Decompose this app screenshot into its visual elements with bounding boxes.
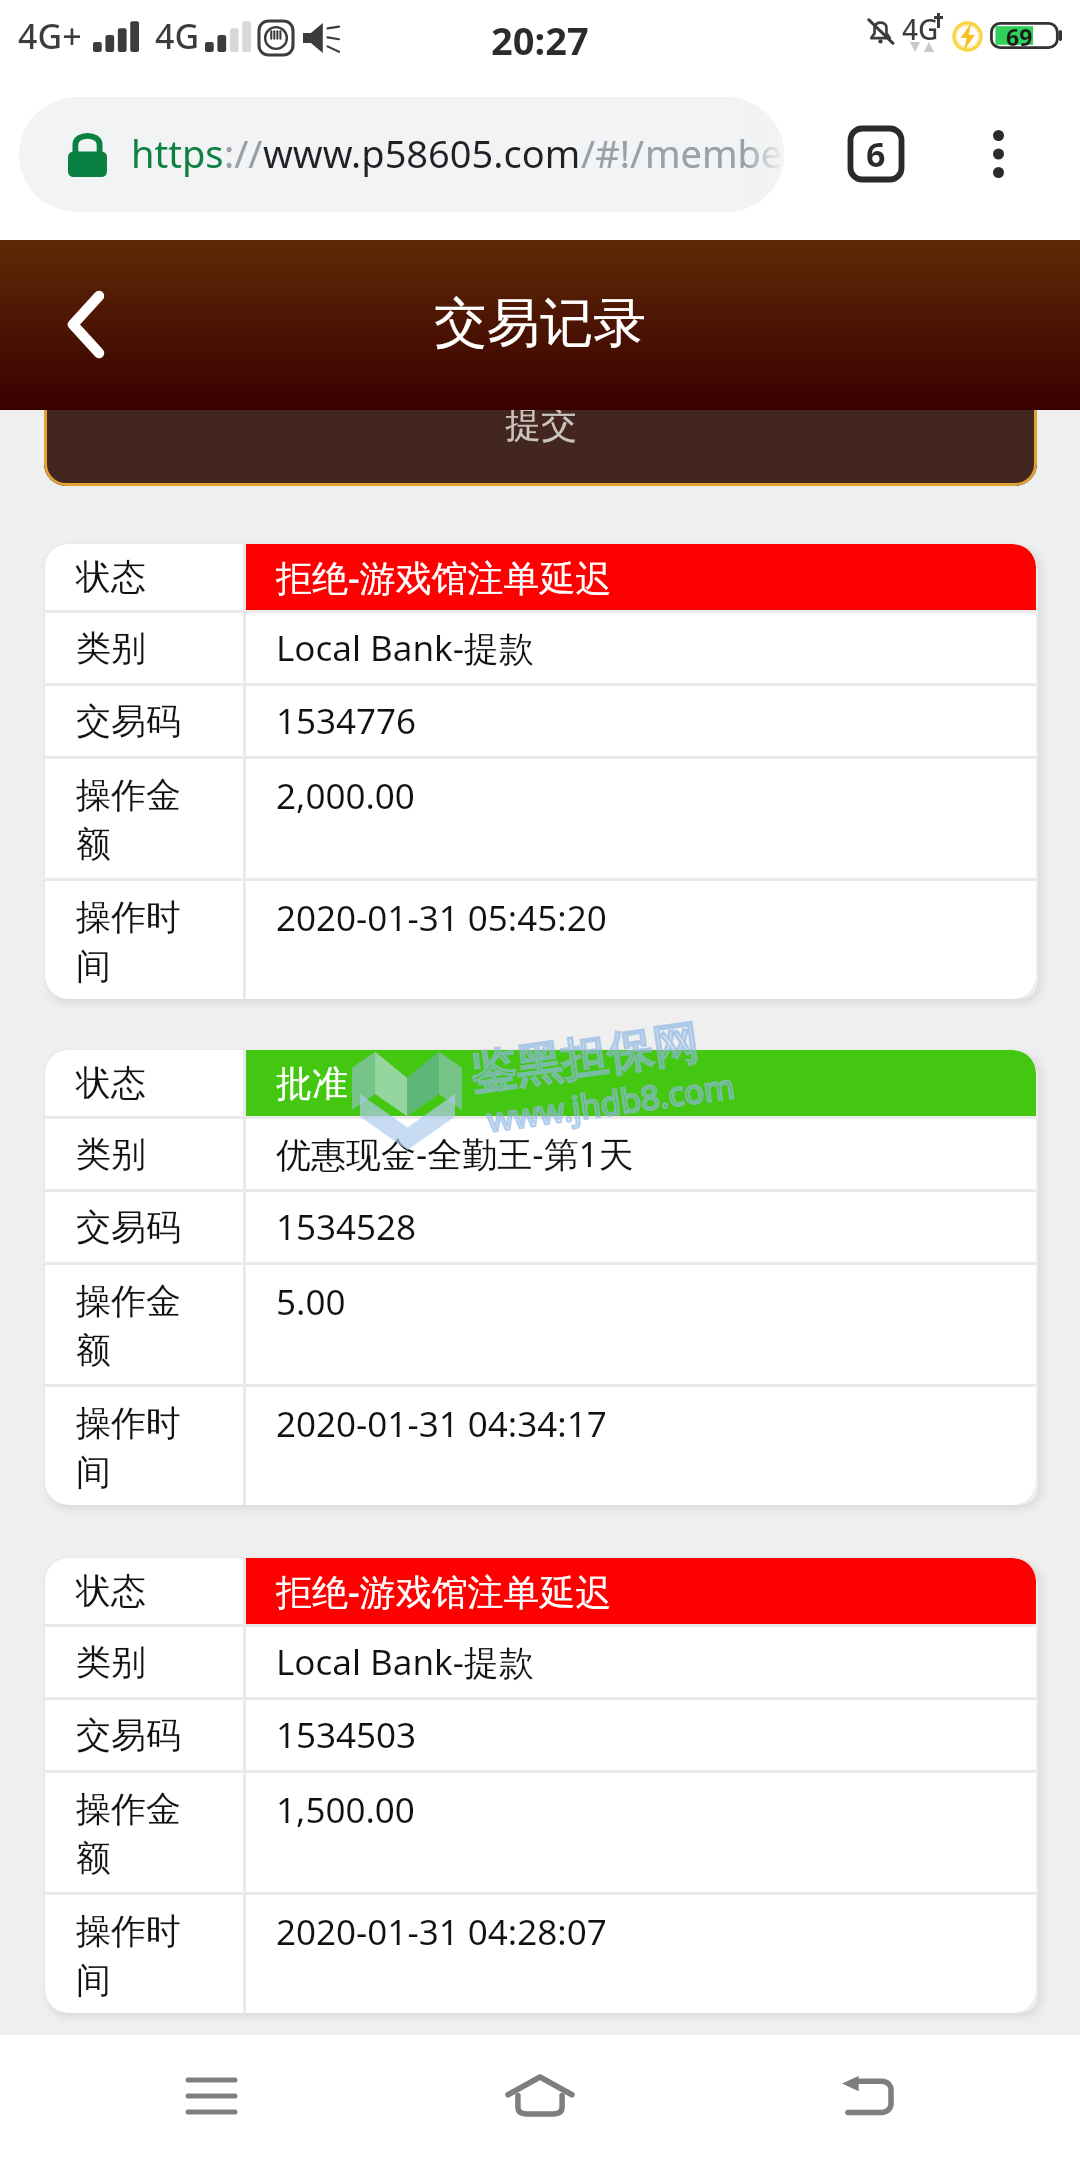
staticText: 4G: [155, 13, 200, 59]
staticText: 2020-01-31 04:28:07: [276, 1908, 607, 1956]
staticText: 20:27: [491, 14, 589, 66]
staticText: 状态: [76, 555, 146, 599]
staticText: 批准: [276, 1061, 348, 1106]
staticText: 鉴黑担保网: [467, 1013, 703, 1103]
staticText: 类别: [76, 1132, 146, 1176]
staticText: 交易码: [76, 699, 181, 743]
staticText: 操作金额: [76, 773, 213, 866]
staticText: 4G+: [18, 13, 82, 59]
button[interactable]: 提交: [44, 370, 1037, 486]
staticText: 拒绝-游戏馆注单延迟: [276, 1567, 612, 1616]
button[interactable]: Back: [0, 240, 150, 410]
staticText: 操作时间: [76, 1909, 213, 2002]
staticText: 优惠现金-全勤王-第1天: [276, 1130, 634, 1178]
staticText: /#!/: [581, 127, 645, 179]
button[interactable]: 状态: [45, 1558, 1036, 2013]
staticText: 交易码: [76, 1205, 181, 1249]
button[interactable]: More options: [968, 124, 1028, 184]
button[interactable]: Home: [474, 2035, 606, 2160]
staticText: 交易记录: [434, 290, 646, 357]
staticText: 69: [1006, 21, 1033, 48]
staticText: member: [645, 127, 784, 179]
staticText: 6: [866, 131, 886, 177]
button[interactable]: Recents: [145, 2035, 277, 2160]
staticText: 提交: [505, 402, 577, 447]
staticText: 5.00: [276, 1278, 346, 1326]
staticText: 操作时间: [76, 895, 213, 988]
staticText: https: [131, 127, 224, 179]
staticText: 1,500.00: [276, 1786, 415, 1834]
staticText: 状态: [76, 1569, 146, 1613]
button[interactable]: 状态: [45, 1050, 1036, 1505]
staticText: www.jhdb8.com: [484, 1063, 738, 1142]
button[interactable]: Tabs: [847, 125, 905, 183]
staticText: 1534503: [276, 1711, 417, 1759]
staticText: Local Bank-提款: [276, 624, 535, 672]
staticText: 类别: [76, 626, 146, 670]
staticText: 2,000.00: [276, 772, 415, 820]
button[interactable]: 状态: [45, 544, 1036, 999]
staticText: 拒绝-游戏馆注单延迟: [276, 553, 612, 602]
staticText: 1534528: [276, 1203, 417, 1251]
staticText: 操作金额: [76, 1279, 213, 1372]
staticText: 交易码: [76, 1713, 181, 1757]
staticText: 4G: [902, 10, 939, 48]
button[interactable]: https: [19, 97, 784, 212]
staticText: 2020-01-31 04:34:17: [276, 1400, 607, 1448]
staticText: www.p58605.com: [263, 127, 581, 179]
staticText: 状态: [76, 1061, 146, 1105]
staticText: Local Bank-提款: [276, 1638, 535, 1686]
staticText: 2020-01-31 05:45:20: [276, 894, 607, 942]
staticText: 操作金额: [76, 1787, 213, 1880]
staticText: ://: [224, 127, 263, 179]
button[interactable]: Back: [800, 2035, 932, 2160]
staticText: 操作时间: [76, 1401, 213, 1494]
staticText: 类别: [76, 1640, 146, 1684]
staticText: 1534776: [276, 697, 417, 745]
